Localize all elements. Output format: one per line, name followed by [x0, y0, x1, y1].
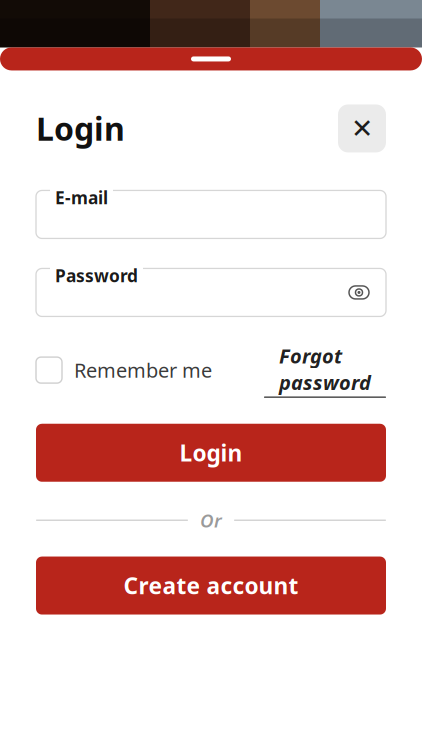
staticText: Or — [200, 508, 222, 533]
button[interactable]: Create account — [36, 557, 386, 615]
button[interactable]: Login — [36, 424, 386, 482]
staticText: Login — [179, 438, 242, 468]
button[interactable]: Show password — [338, 274, 380, 310]
staticText: Login — [36, 107, 125, 150]
staticText: Remember me — [74, 357, 212, 383]
staticText: Forgot password — [279, 342, 371, 395]
staticText: Password — [55, 264, 138, 287]
staticText: ✕ — [351, 113, 373, 144]
button[interactable]: Remember me — [36, 357, 212, 383]
staticText: Create account — [123, 570, 298, 601]
staticText: E-mail — [55, 186, 108, 209]
button[interactable]: Close — [338, 104, 386, 152]
button[interactable]: Forgot password — [264, 342, 386, 398]
